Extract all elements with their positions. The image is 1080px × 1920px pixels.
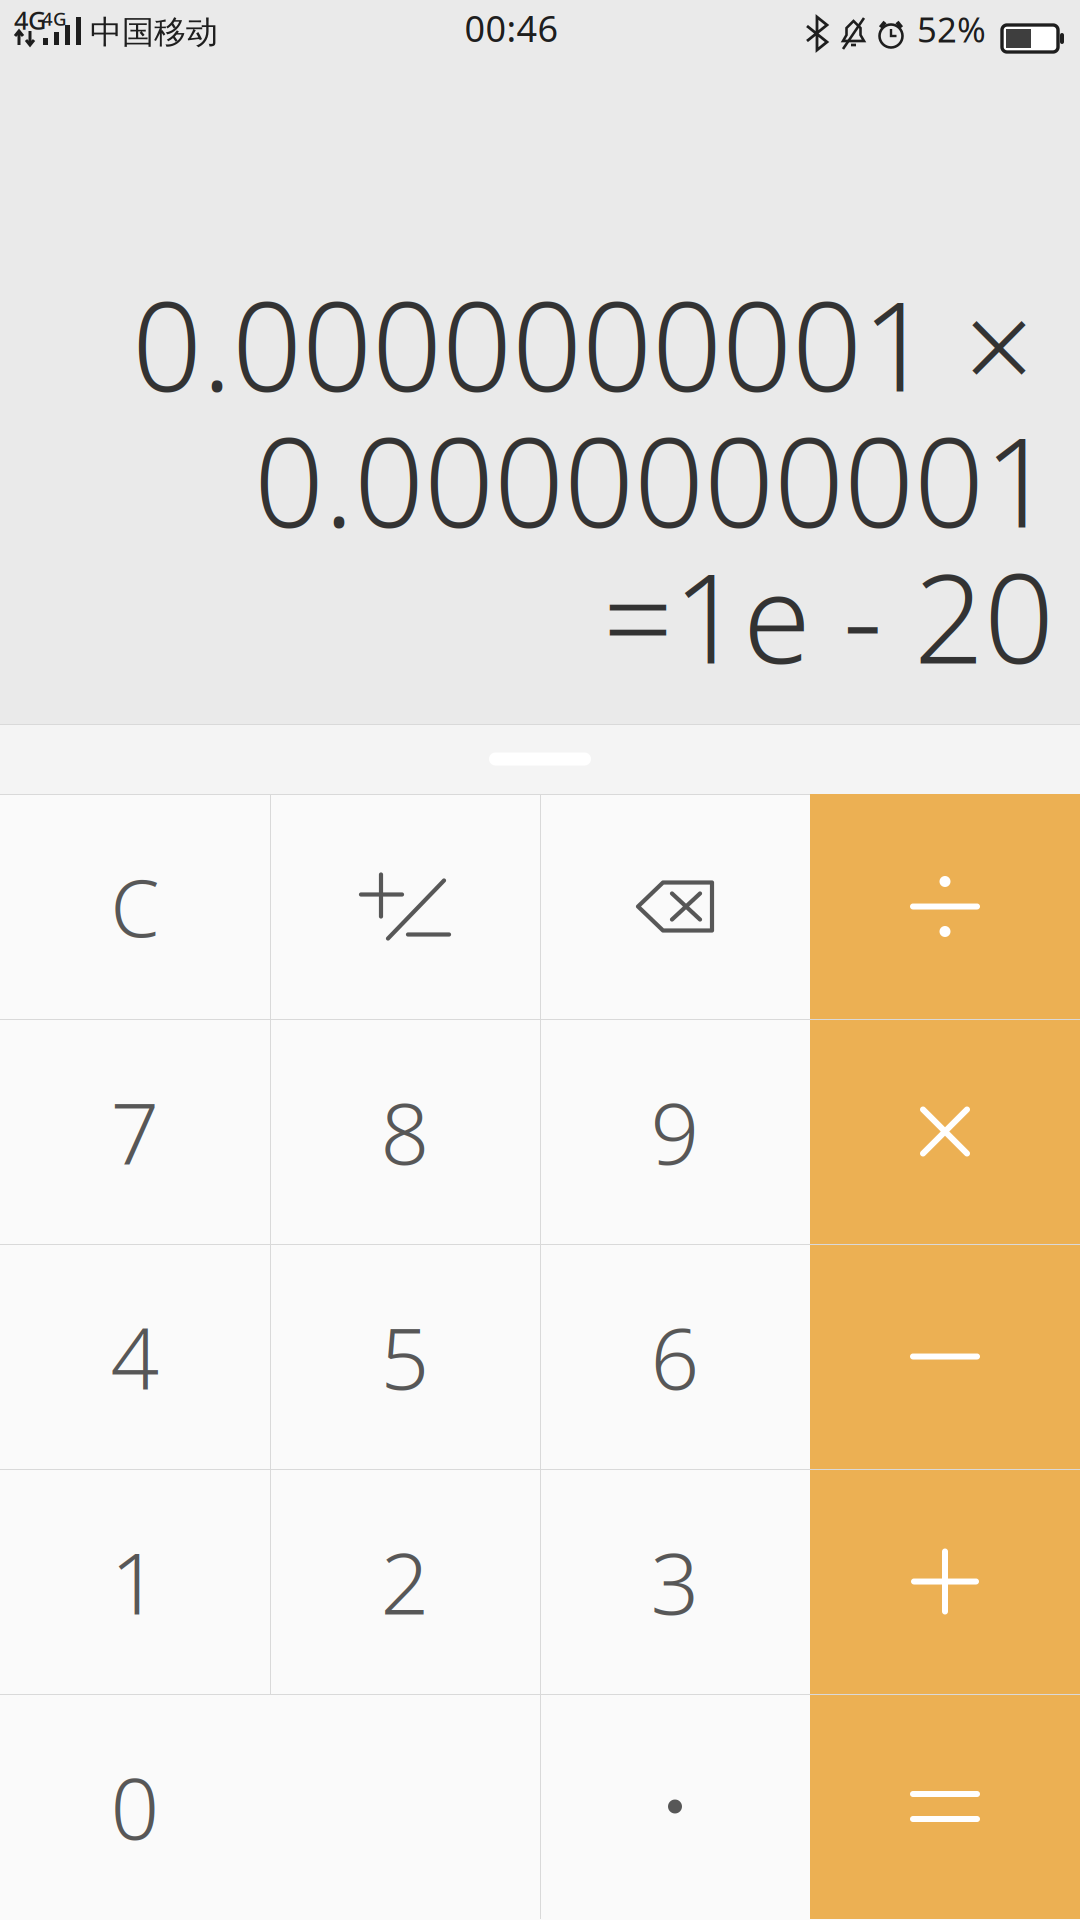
button[interactable]: 0 — [0, 1694, 540, 1919]
staticText: 6 — [650, 1300, 699, 1413]
button[interactable]: Multiply — [810, 1019, 1080, 1244]
button[interactable]: 7 — [0, 1019, 270, 1244]
staticText: 3 — [650, 1525, 699, 1638]
button[interactable]: 4 — [0, 1244, 270, 1469]
staticText: 00:46 — [464, 4, 558, 52]
button[interactable]: Minus — [810, 1244, 1080, 1469]
button[interactable]: 5 — [270, 1244, 540, 1469]
staticText: 5 — [380, 1300, 429, 1413]
button[interactable]: 6 — [540, 1244, 810, 1469]
staticText: 1 — [110, 1525, 159, 1638]
button[interactable]: Backspace — [540, 794, 810, 1019]
button[interactable]: 3 — [540, 1469, 810, 1694]
staticText: 7 — [110, 1075, 159, 1188]
staticText: 8 — [380, 1075, 429, 1188]
staticText: C — [110, 854, 159, 959]
staticText: 中国移动 — [90, 13, 218, 52]
button[interactable]: Plus — [810, 1469, 1080, 1694]
button[interactable]: 8 — [270, 1019, 540, 1244]
staticText: 0 — [110, 1750, 159, 1863]
button[interactable]: Divide — [810, 794, 1080, 1019]
staticText: =1e - 20 — [603, 535, 1054, 697]
button[interactable]: Clear — [0, 794, 270, 1019]
button[interactable]: 1 — [0, 1469, 270, 1694]
staticText: 4G — [14, 3, 46, 37]
staticText: 52% — [917, 6, 986, 52]
button[interactable]: Plus minus — [270, 794, 540, 1019]
button[interactable]: Decimal point — [540, 1694, 810, 1919]
staticText: 2 — [380, 1525, 429, 1638]
staticText: 4 — [110, 1300, 159, 1413]
button[interactable]: Equals — [810, 1694, 1080, 1919]
button[interactable]: 2 — [270, 1469, 540, 1694]
staticText: 4G — [42, 6, 67, 31]
staticText: 0.0000000001 × — [132, 263, 1054, 425]
button[interactable]: 9 — [540, 1019, 810, 1244]
staticText: 0.0000000001 — [254, 399, 1054, 561]
staticText: 9 — [650, 1075, 699, 1188]
